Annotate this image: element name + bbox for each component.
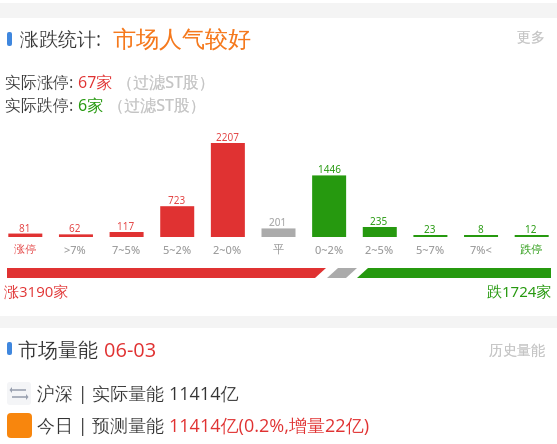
staticText: 今日 | 预测量能 (37, 413, 169, 438)
button[interactable]: 跌1724家 (487, 281, 552, 301)
staticText: 平 (273, 242, 284, 256)
staticText: 涨3190家 (4, 281, 69, 301)
staticText: 2~5% (365, 242, 394, 257)
staticText: （过滤ST股） (104, 94, 206, 116)
staticText: 23 (424, 222, 436, 236)
button[interactable]: 沪深 | 实际量能 11414亿 (37, 373, 239, 413)
staticText: 5~2% (163, 242, 192, 257)
staticText: 2~0% (213, 242, 242, 257)
staticText: 0~2% (315, 242, 344, 257)
staticText: 2207 (216, 130, 239, 144)
staticText: 81 (19, 221, 31, 235)
staticText: 7%< (470, 242, 492, 257)
staticText: （过滤ST股） (113, 71, 215, 93)
staticText: 235 (370, 214, 388, 228)
staticText: 06-03 (104, 336, 157, 363)
button[interactable]: 今日 | 预测量能 (37, 405, 370, 444)
staticText: 7~5% (112, 242, 141, 257)
button[interactable]: 历史量能 (489, 342, 545, 360)
staticText: 实际涨停: (5, 71, 78, 93)
staticText: 12 (525, 222, 537, 236)
staticText: 201 (269, 215, 287, 229)
staticText: 5~7% (416, 242, 445, 257)
staticText: 67家 (78, 71, 113, 93)
staticText: 市场量能 (18, 336, 104, 363)
staticText: >7% (64, 242, 86, 257)
staticText: 跌停 (520, 242, 542, 256)
staticText: 6家 (78, 94, 104, 116)
button[interactable]: 更多 (517, 29, 545, 47)
staticText: 11414亿(0.2%,增量22亿) (169, 413, 370, 438)
staticText: 8 (478, 222, 484, 236)
staticText: 723 (168, 193, 186, 207)
staticText: 市场人气较好 (113, 25, 251, 54)
staticText: 实际跌停: (5, 94, 78, 116)
staticText: 涨跌统计: (20, 26, 102, 52)
staticText: 62 (69, 221, 81, 235)
staticText: 涨停 (14, 242, 36, 256)
staticText: 1446 (318, 162, 341, 176)
staticText: 117 (117, 219, 135, 233)
staticText: 沪深 | 实际量能 11414亿 (37, 381, 239, 406)
